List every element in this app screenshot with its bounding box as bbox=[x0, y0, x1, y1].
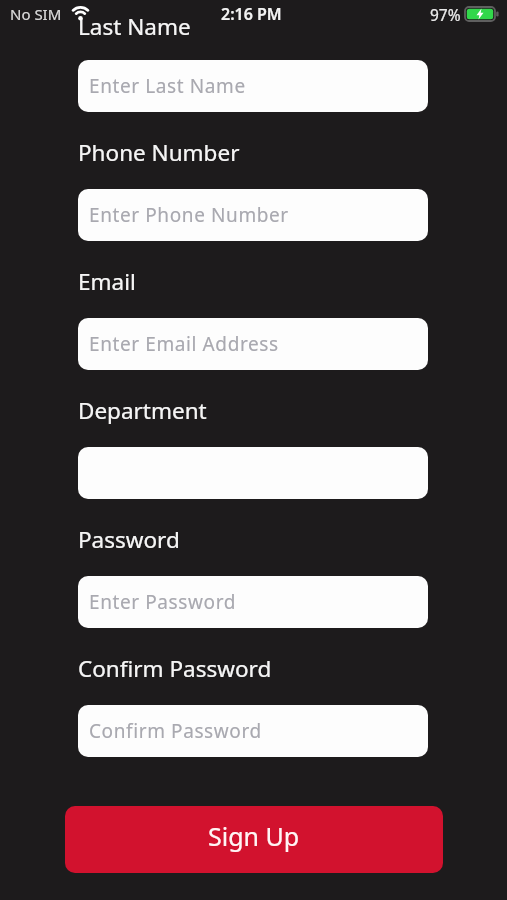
button[interactable]: Enter Last Name bbox=[78, 60, 428, 112]
staticText: Last Name bbox=[78, 11, 191, 42]
staticText: No SIM bbox=[10, 4, 62, 24]
staticText: Password bbox=[78, 524, 180, 555]
staticText: 97% bbox=[430, 4, 461, 25]
staticText: Enter Phone Number bbox=[89, 202, 289, 228]
button[interactable] bbox=[78, 447, 428, 499]
button[interactable]: Enter Password bbox=[78, 576, 428, 628]
staticText: Sign Up bbox=[208, 819, 300, 853]
staticText: Confirm Password bbox=[78, 653, 272, 684]
staticText: 2:16 PM bbox=[221, 3, 282, 25]
staticText: Enter Password bbox=[89, 589, 237, 615]
button[interactable]: Enter Email Address bbox=[78, 318, 428, 370]
staticText: Enter Last Name bbox=[89, 73, 246, 99]
button[interactable]: Confirm Password bbox=[78, 705, 428, 757]
staticText: Department bbox=[78, 395, 207, 426]
staticText: Enter Email Address bbox=[89, 331, 279, 357]
button[interactable]: Sign Up bbox=[65, 806, 443, 873]
button[interactable]: Enter Phone Number bbox=[78, 189, 428, 241]
staticText: Confirm Password bbox=[89, 718, 262, 744]
staticText: Phone Number bbox=[78, 137, 240, 168]
staticText: Email bbox=[78, 266, 136, 297]
